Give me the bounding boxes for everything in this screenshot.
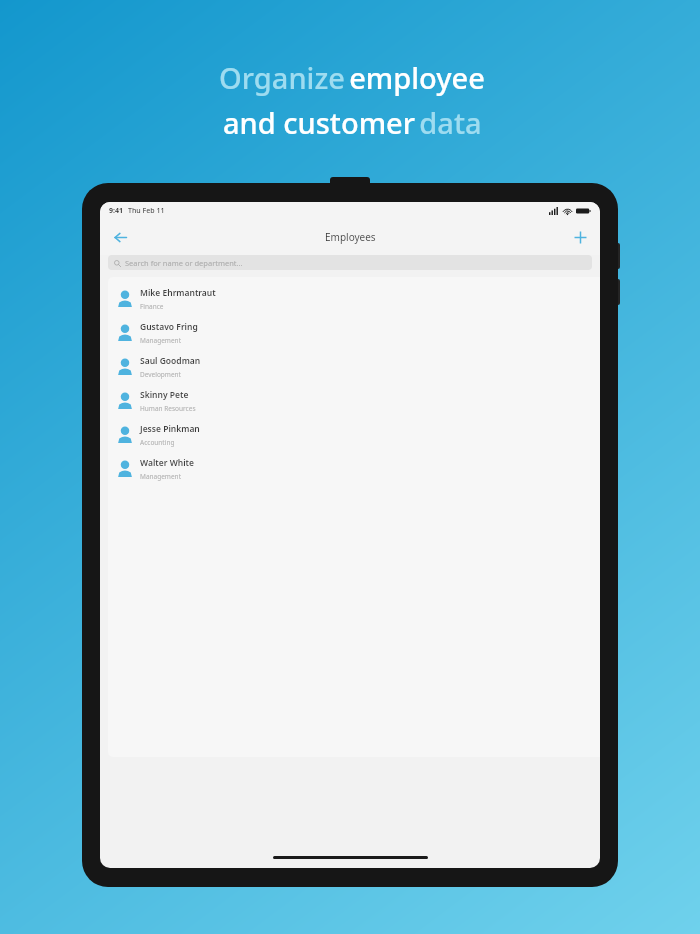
staticText: Organize [215, 58, 349, 97]
staticText: Jesse Pinkman [140, 423, 200, 435]
staticText: Thu Feb 11 [128, 206, 165, 216]
staticText: Saul Goodman [140, 355, 201, 367]
staticText: Management [140, 336, 181, 345]
button[interactable]: Skinny Pete [108, 384, 600, 418]
staticText: and customer [219, 103, 419, 142]
staticText: Finance [140, 302, 164, 311]
button[interactable]: Gustavo Fring [108, 316, 600, 350]
button[interactable]: Walter White [108, 452, 600, 486]
staticText: 9:41 [109, 206, 123, 216]
staticText: Skinny Pete [140, 389, 189, 401]
staticText: Walter White [140, 457, 194, 469]
staticText: Management [140, 472, 181, 481]
staticText: Search for name or department... [125, 258, 243, 268]
staticText: Accounting [140, 438, 175, 447]
staticText: Employees [325, 230, 376, 244]
button[interactable]: Add employee [566, 223, 594, 251]
staticText: employee [349, 58, 485, 97]
staticText: Mike Ehrmantraut [140, 287, 216, 299]
button[interactable]: Search for name or department... [108, 255, 592, 270]
staticText: Development [140, 370, 181, 379]
button[interactable]: Mike Ehrmantraut [108, 282, 600, 316]
button[interactable]: Saul Goodman [108, 350, 600, 384]
staticText: Human Resources [140, 404, 196, 413]
button[interactable]: Jesse Pinkman [108, 418, 600, 452]
staticText: data [419, 103, 482, 142]
staticText: Gustavo Fring [140, 321, 198, 333]
button[interactable]: Back [106, 223, 134, 251]
